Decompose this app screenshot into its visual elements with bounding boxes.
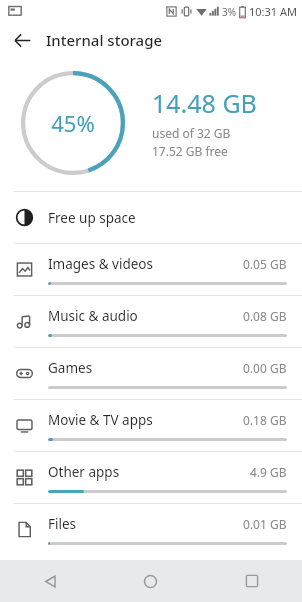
button[interactable]: Back (6, 24, 38, 56)
button[interactable]: Home (100, 560, 201, 602)
staticText: used of 32 GB (152, 125, 231, 141)
staticText: 14.48 GB (152, 86, 257, 120)
button[interactable]: Back (0, 560, 100, 602)
staticText: Music & audio (48, 307, 138, 325)
staticText: Free up space (48, 209, 136, 227)
button[interactable]: Files (0, 504, 302, 555)
staticText: 3% (222, 5, 237, 19)
staticText: Internal storage (46, 30, 163, 50)
staticText: 0.05 GB (243, 256, 287, 272)
staticText: 0.18 GB (243, 412, 287, 428)
button[interactable]: Free up space (0, 192, 302, 243)
staticText: 17.52 GB free (152, 143, 228, 159)
staticText: Images & videos (48, 255, 153, 273)
button[interactable]: Movie & TV apps (0, 400, 302, 451)
staticText: 0.01 GB (243, 516, 287, 532)
staticText: 4.9 GB (250, 464, 287, 480)
button[interactable]: Other apps (0, 452, 302, 503)
staticText: Files (48, 515, 77, 533)
staticText: Games (48, 359, 93, 377)
button[interactable]: Recent apps (201, 560, 302, 602)
staticText: 0.08 GB (243, 308, 287, 324)
staticText: 45% (51, 108, 95, 138)
button[interactable]: Games (0, 348, 302, 399)
staticText: Movie & TV apps (48, 411, 153, 429)
button[interactable]: Images & videos (0, 244, 302, 295)
staticText: 10:31 AM (249, 4, 297, 19)
staticText: 0.00 GB (243, 360, 287, 376)
button[interactable]: Music & audio (0, 296, 302, 347)
staticText: Other apps (48, 463, 120, 481)
